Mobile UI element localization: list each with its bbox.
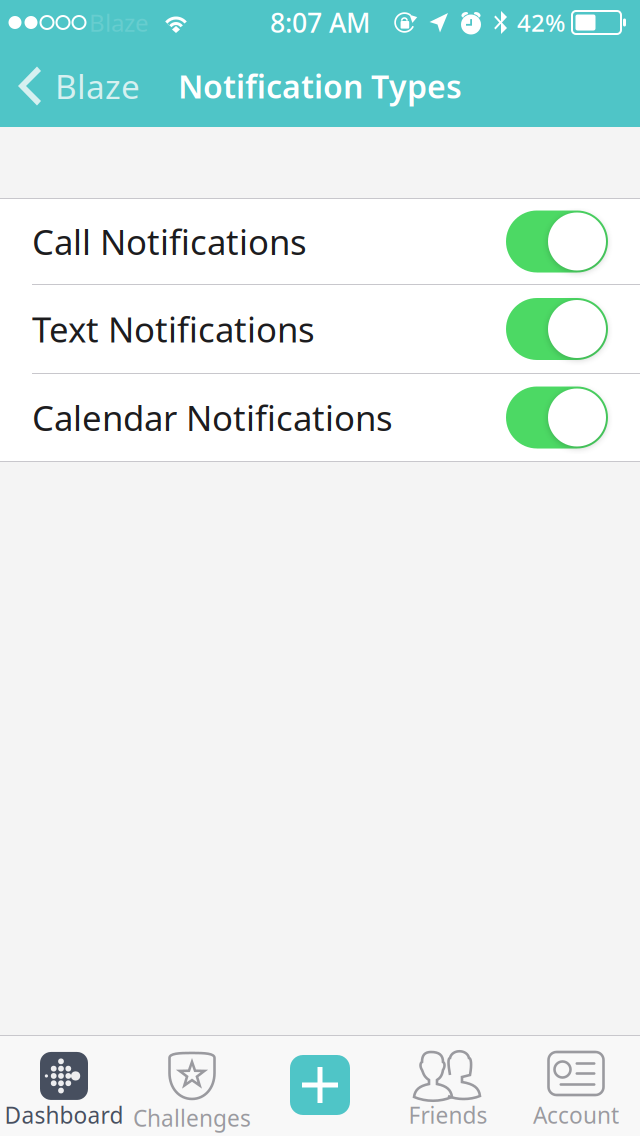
button[interactable]: Friends	[384, 1036, 512, 1136]
button[interactable]: Text Notifications	[0, 285, 640, 374]
button[interactable]: Dashboard	[0, 1036, 128, 1136]
staticText: Blaze	[89, 7, 149, 38]
staticText: Dashboard	[4, 1100, 123, 1130]
button[interactable]: Account	[512, 1036, 640, 1136]
staticText: Calendar Notifications	[32, 394, 393, 440]
button[interactable]: Call Notifications	[0, 199, 640, 285]
staticText: Account	[533, 1100, 619, 1130]
button[interactable]: Add	[256, 1036, 384, 1136]
button[interactable]: Blaze	[0, 45, 150, 127]
staticText: 8:07 AM	[270, 5, 370, 40]
staticText: Challenges	[133, 1103, 251, 1133]
button[interactable]: Challenges	[128, 1036, 256, 1136]
staticText: Text Notifications	[32, 306, 315, 352]
staticText: Notification Types	[178, 65, 462, 107]
staticText: Friends	[408, 1100, 487, 1130]
button[interactable]: Calendar Notifications	[0, 374, 640, 461]
staticText: Blaze	[55, 64, 140, 108]
staticText: Call Notifications	[32, 218, 307, 264]
staticText: 42%	[517, 7, 565, 38]
